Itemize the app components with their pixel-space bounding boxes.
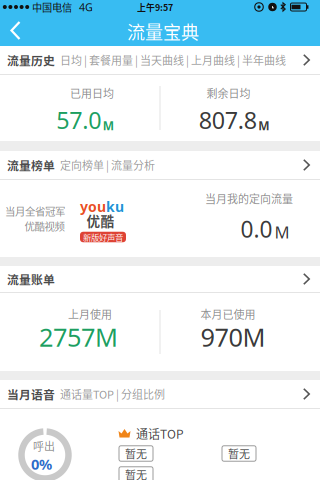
staticText: 新版好声音 bbox=[83, 231, 123, 243]
staticText: 优酷视频 bbox=[24, 218, 64, 233]
staticText: 0.0 bbox=[240, 214, 272, 244]
staticText: you bbox=[80, 197, 106, 216]
staticText: 流量历史 bbox=[7, 51, 55, 68]
button[interactable]: 暂无 bbox=[119, 467, 153, 480]
staticText: 定向榜单 | 流量分析 bbox=[60, 157, 155, 173]
staticText: 暂无 bbox=[125, 466, 147, 480]
staticText: 流量宝典 bbox=[127, 18, 199, 44]
staticText: 日均 | 套餐用量 | 当天曲线 | 上月曲线 | 半年曲线 bbox=[60, 52, 286, 68]
button[interactable]: 流量榜单 bbox=[0, 151, 320, 179]
staticText: M bbox=[103, 117, 114, 134]
staticText: M bbox=[258, 117, 269, 134]
staticText: 中国电信 bbox=[32, 0, 72, 14]
staticText: 流量榜单 bbox=[7, 156, 55, 173]
staticText: 2757M bbox=[39, 320, 118, 354]
staticText: 上午9:57 bbox=[137, 1, 173, 13]
button[interactable]: 当月语音 bbox=[0, 380, 320, 408]
staticText: 通话TOP bbox=[136, 425, 184, 442]
staticText: 4G bbox=[79, 0, 93, 14]
button[interactable]: 暂无 bbox=[222, 446, 256, 461]
staticText: 通话量TOP | 分组比例 bbox=[60, 386, 165, 402]
staticText: ku bbox=[106, 197, 124, 216]
button[interactable]: 暂无 bbox=[119, 446, 153, 461]
staticText: 呼出 bbox=[33, 438, 55, 454]
button[interactable]: 流量账单 bbox=[0, 266, 320, 292]
staticText: 当月我的定向流量 bbox=[205, 190, 293, 206]
staticText: 上月使用 bbox=[68, 306, 112, 322]
staticText: 57.0 bbox=[56, 104, 101, 136]
staticText: 暂无 bbox=[228, 445, 250, 461]
button[interactable]: Back bbox=[0, 15, 30, 45]
staticText: M bbox=[274, 221, 289, 243]
staticText: 当月语音 bbox=[7, 385, 55, 402]
staticText: 0% bbox=[31, 454, 52, 474]
staticText: 已用日均 bbox=[70, 85, 114, 101]
button[interactable]: 流量历史 bbox=[0, 46, 320, 74]
staticText: 流量账单 bbox=[7, 270, 55, 287]
staticText: 剩余日均 bbox=[206, 85, 250, 101]
staticText: 本月已使用 bbox=[200, 306, 255, 322]
staticText: 当月全省冠军 bbox=[5, 203, 65, 218]
staticText: 970M bbox=[200, 320, 265, 354]
staticText: 暂无 bbox=[125, 445, 147, 461]
staticText: 优酷 bbox=[86, 211, 114, 230]
staticText: 807.8 bbox=[199, 104, 257, 136]
